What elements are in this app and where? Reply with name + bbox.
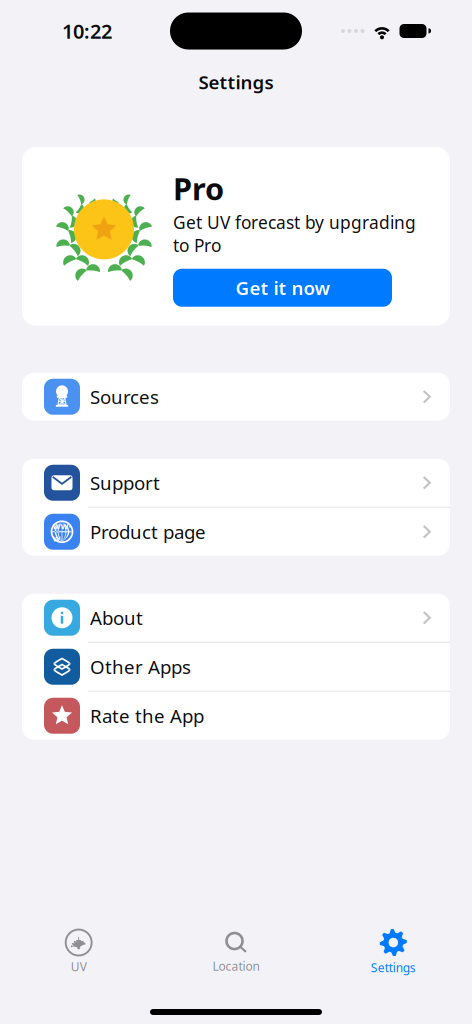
staticText: 10:22 <box>62 18 112 44</box>
button[interactable]: Location <box>157 923 315 981</box>
button[interactable]: Settings <box>315 923 472 981</box>
staticText: Pro <box>173 168 224 209</box>
button[interactable]: Get it now <box>173 269 392 307</box>
staticText: Other Apps <box>90 654 191 679</box>
staticText: Settings <box>198 70 273 94</box>
staticText: Location <box>212 958 259 974</box>
staticText: Product page <box>90 519 206 544</box>
staticText: Get it now <box>235 275 329 300</box>
staticText: Rate the App <box>90 703 204 728</box>
button[interactable]: Sources <box>22 373 450 421</box>
button[interactable]: Support <box>22 459 450 507</box>
button[interactable]: UV <box>0 923 157 981</box>
button[interactable]: www <box>22 508 450 556</box>
staticText: www <box>52 519 71 544</box>
button[interactable]: Other Apps <box>22 643 450 691</box>
staticText: Get UV forecast by upgrading to Pro <box>173 211 416 257</box>
staticText: About <box>90 605 143 630</box>
button[interactable]: Rate the App <box>22 692 450 740</box>
staticText: Settings <box>371 959 416 975</box>
staticText: Sources <box>90 384 159 409</box>
staticText: UV <box>71 958 87 974</box>
button[interactable]: About <box>22 594 450 642</box>
staticText: Support <box>90 470 160 495</box>
